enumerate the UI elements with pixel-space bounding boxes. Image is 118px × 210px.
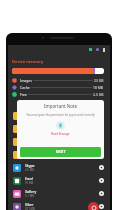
button[interactable]: Play — [13, 148, 104, 161]
staticText: 4.6 MB — [25, 168, 35, 172]
staticText: 18 MB — [93, 85, 104, 90]
staticText: Viber — [25, 202, 34, 207]
button[interactable]: NEXT — [20, 147, 101, 157]
staticText: Notes — [25, 111, 35, 116]
button[interactable]: Notes — [13, 109, 104, 122]
button[interactable]: Drive — [13, 135, 104, 148]
button[interactable]: Clean — [88, 202, 99, 210]
staticText: Device memory — [12, 59, 44, 65]
button[interactable]: Free — [12, 91, 104, 98]
other: Info — [99, 178, 104, 183]
staticText: Excel — [25, 176, 34, 181]
staticText: Images — [20, 78, 32, 83]
staticText: 2.3 GB — [93, 92, 104, 97]
staticText: Important Note — [44, 103, 78, 109]
button[interactable]: Gallery — [13, 187, 104, 200]
staticText: Gallery — [25, 189, 37, 194]
staticText: 201 MB — [25, 207, 35, 210]
staticText: You must grant the permission for app to… — [26, 113, 95, 117]
staticText: Skype — [25, 163, 35, 168]
other: Info — [99, 191, 104, 196]
staticText: Free — [20, 92, 27, 97]
staticText: Cache — [20, 85, 30, 90]
button[interactable]: Excel — [13, 174, 104, 187]
button[interactable]: Viber — [13, 200, 104, 210]
other: Info — [99, 152, 104, 157]
button[interactable]: Maps — [13, 122, 104, 135]
staticText: 5.1 MB — [25, 194, 35, 198]
other: Storage permission — [56, 121, 65, 130]
other: Info — [99, 204, 104, 209]
staticText: 23 GB — [94, 78, 104, 83]
staticText: 16 MB — [25, 181, 34, 185]
staticText: 96 MB — [25, 155, 34, 159]
other: Info — [99, 165, 104, 170]
button[interactable]: Cache — [12, 84, 104, 91]
button[interactable]: Skype — [13, 161, 104, 174]
staticText: Read Storage — [51, 132, 70, 136]
button[interactable]: Images — [12, 77, 104, 84]
staticText: NEXT — [56, 150, 66, 154]
